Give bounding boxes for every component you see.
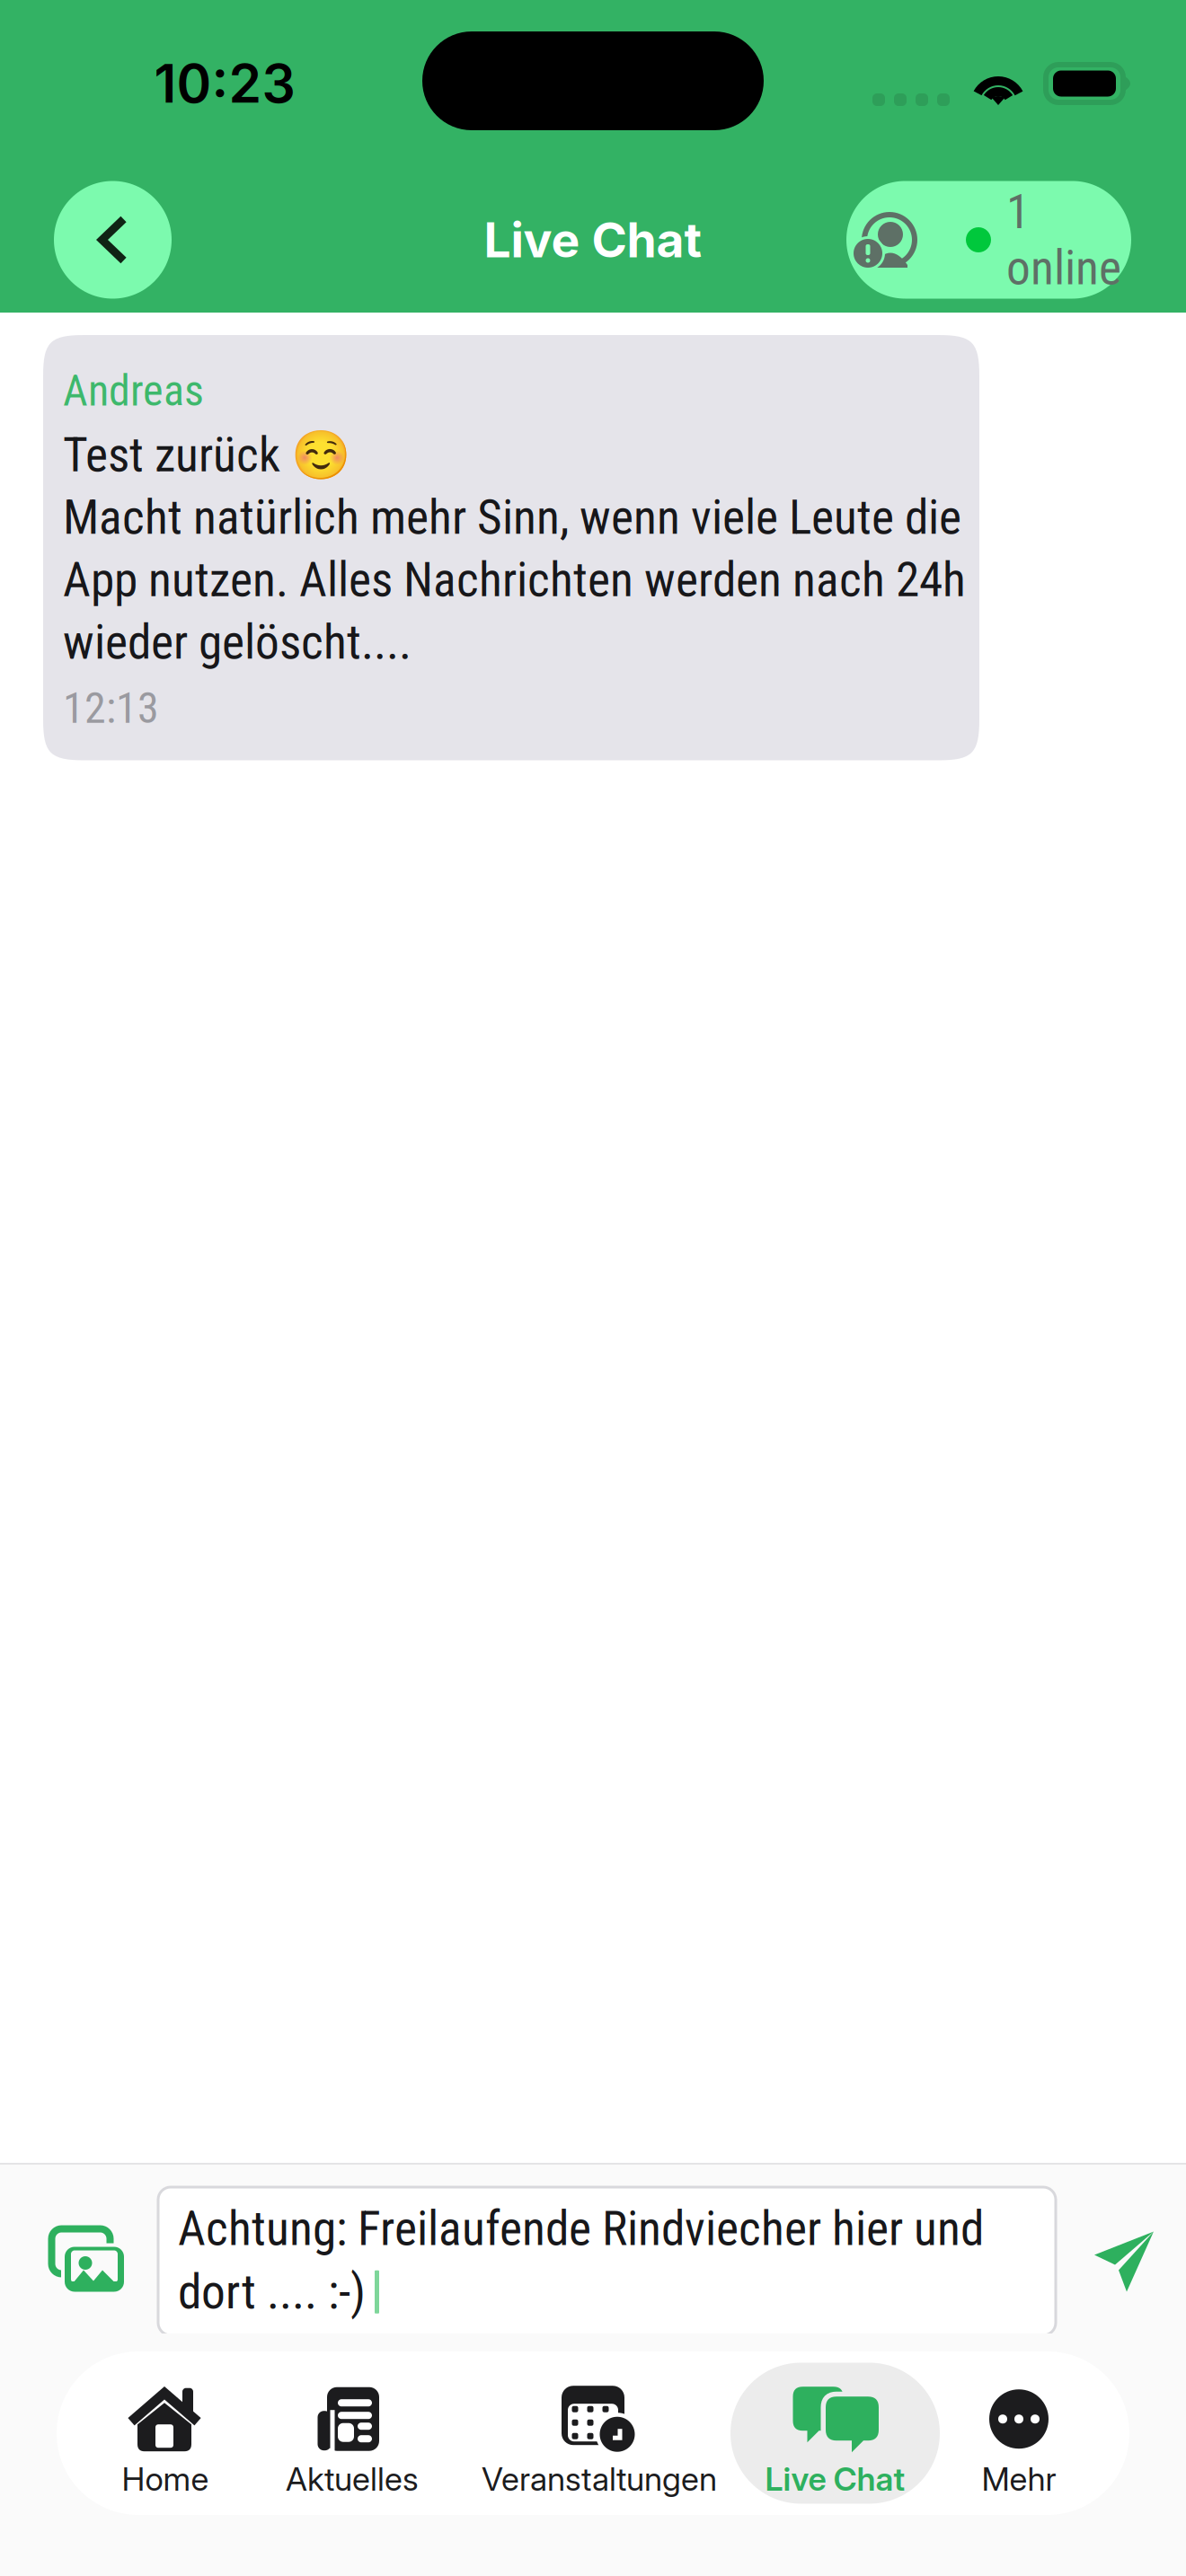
- staticText: Live Chat: [484, 211, 702, 269]
- staticText: 10:23: [154, 52, 295, 115]
- button[interactable]: Send message: [1093, 2230, 1155, 2293]
- button[interactable]: Back: [54, 181, 172, 299]
- button[interactable]: Aktuelles: [262, 2363, 442, 2504]
- button[interactable]: 1 online: [846, 181, 1131, 299]
- staticText: Achtung: Freilaufende Rindviecher hier u…: [178, 2201, 984, 2257]
- button[interactable]: Live Chat: [730, 2363, 940, 2504]
- staticText: 1 online: [1006, 184, 1121, 296]
- button[interactable]: Mehr: [947, 2363, 1091, 2504]
- staticText: Live Chat: [765, 2459, 905, 2499]
- button[interactable]: Veranstaltungen: [474, 2363, 725, 2504]
- staticText: Mehr: [982, 2459, 1056, 2499]
- button[interactable]: Home: [93, 2363, 237, 2504]
- staticText: Test zurück ☺️ Macht natürlich mehr Sinn…: [63, 427, 966, 670]
- staticText: 12:13: [63, 683, 159, 733]
- staticText: dort .... :-): [178, 2264, 366, 2320]
- staticText: Aktuelles: [286, 2459, 419, 2499]
- staticText: Veranstaltungen: [482, 2459, 717, 2499]
- staticText: Andreas: [63, 366, 204, 416]
- staticText: Home: [122, 2459, 209, 2499]
- button[interactable]: Attach photo: [47, 2226, 129, 2296]
